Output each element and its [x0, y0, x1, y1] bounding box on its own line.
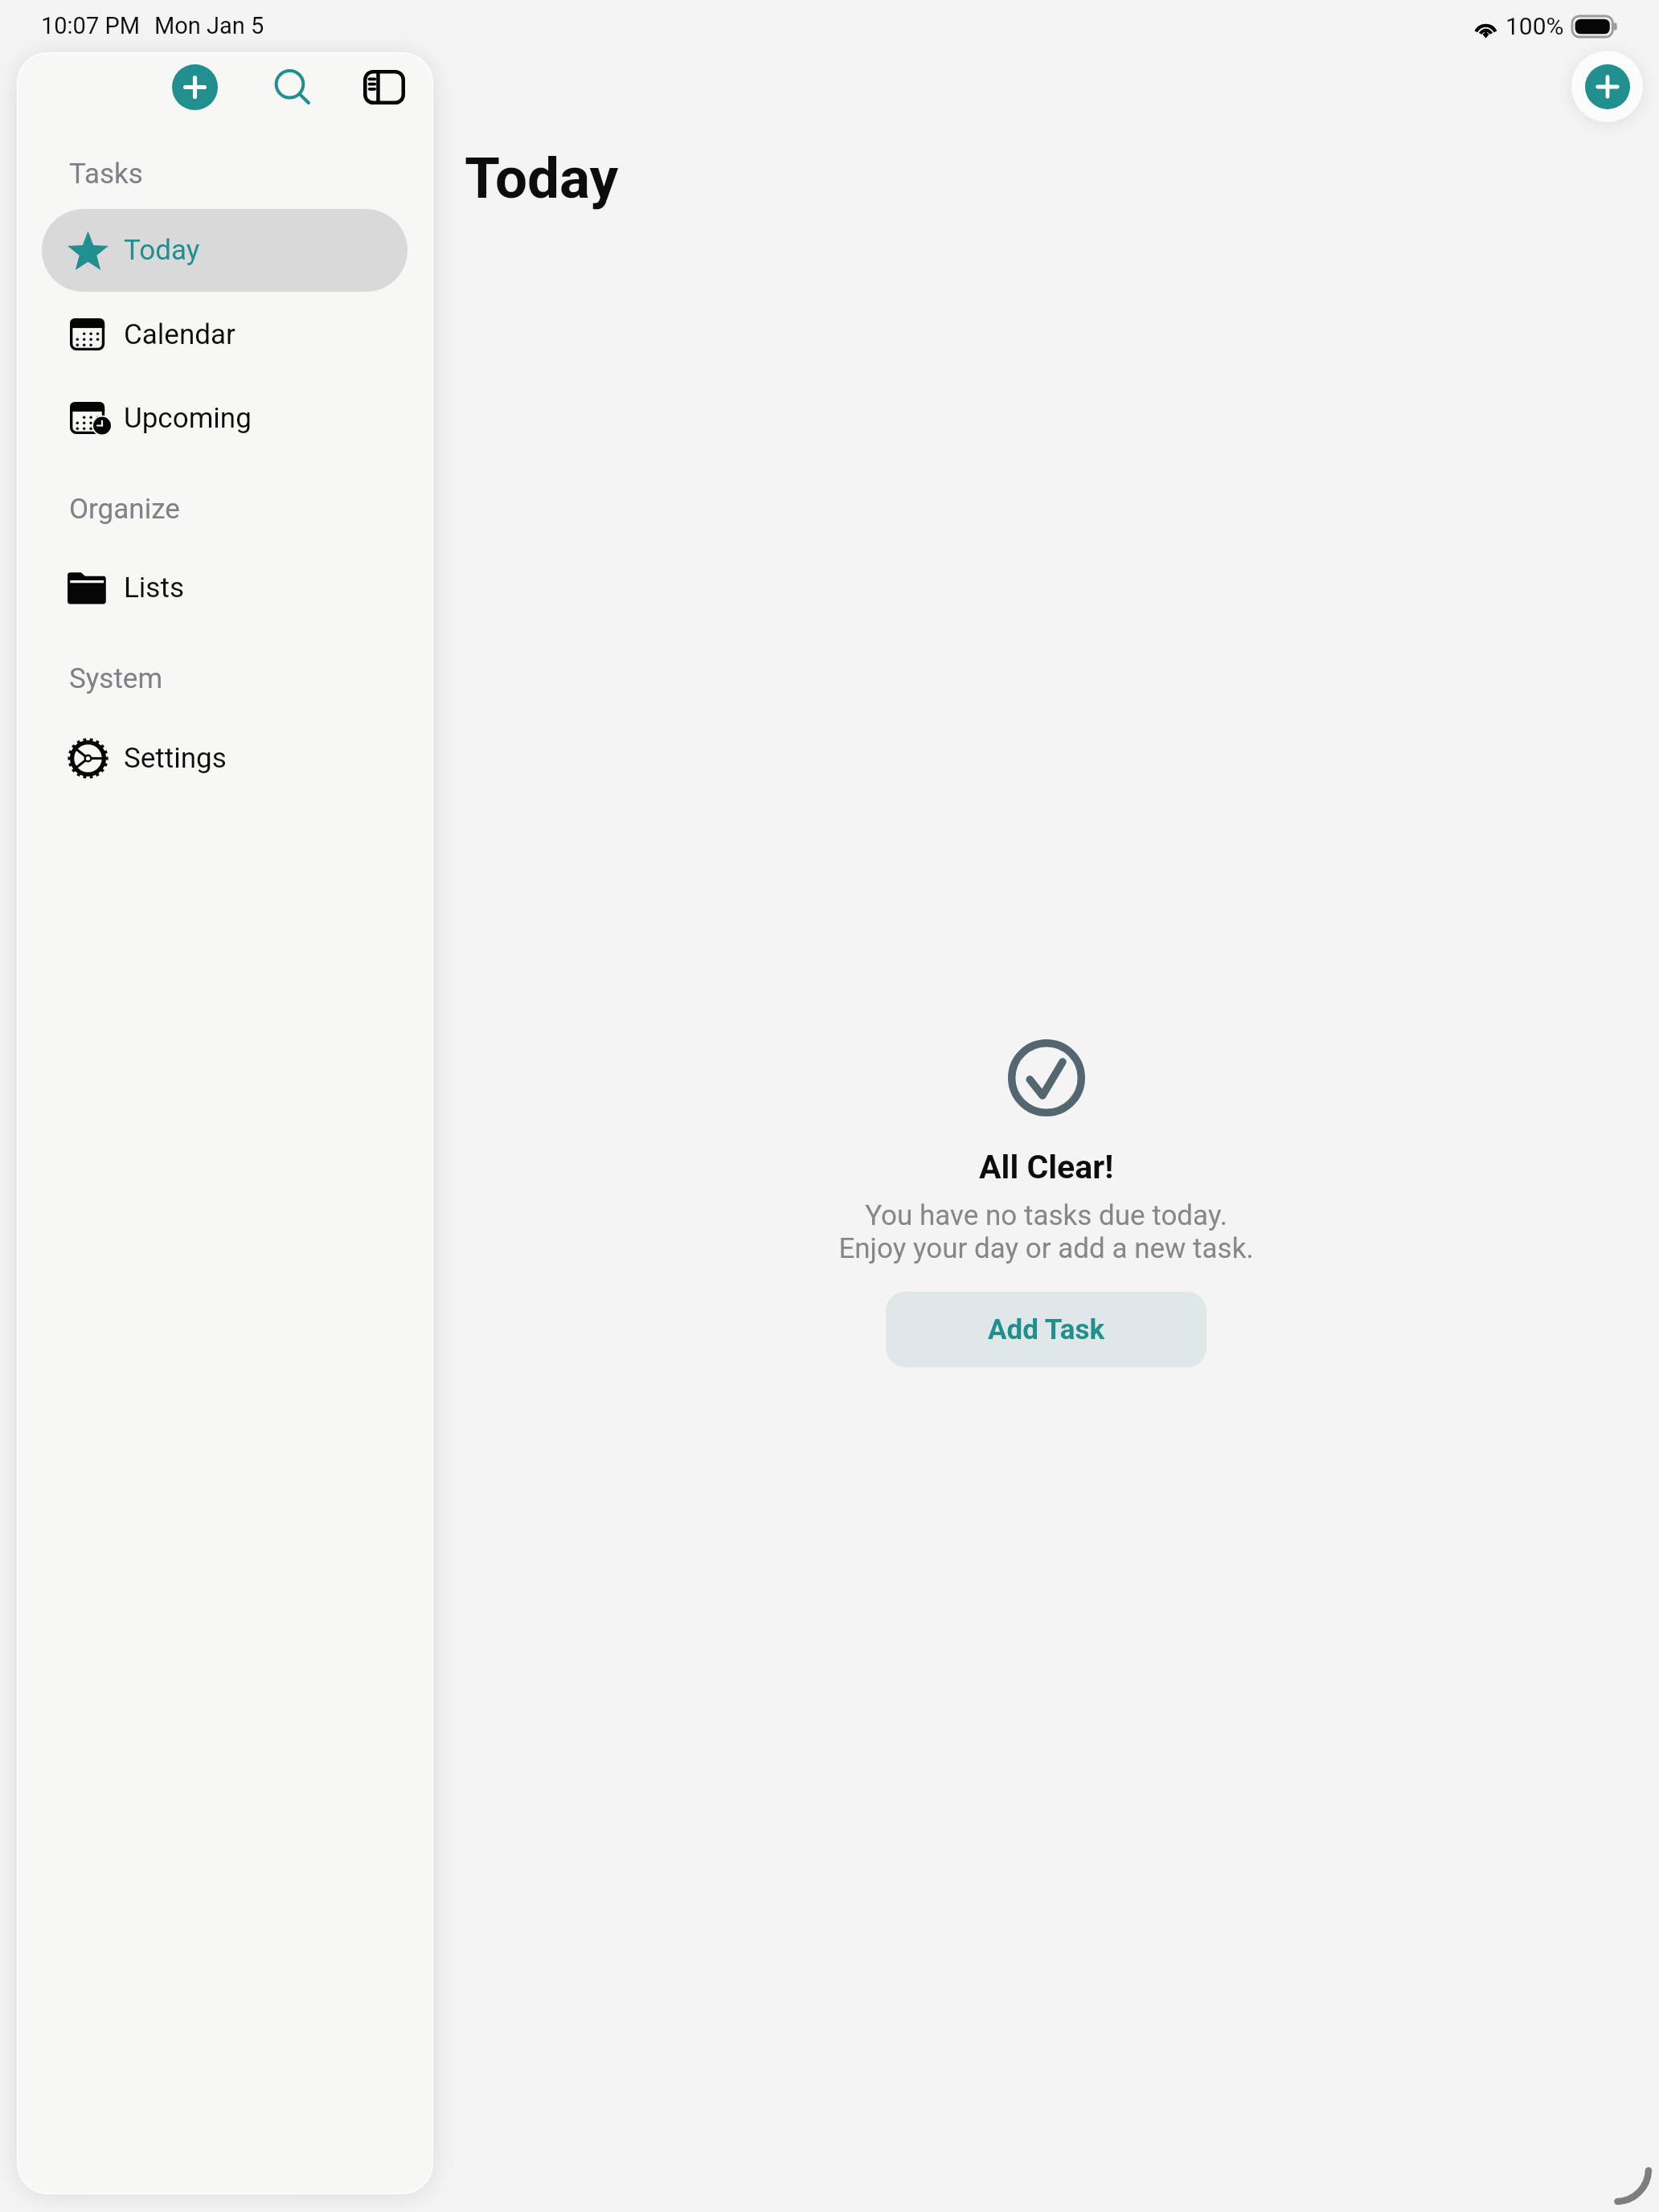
button[interactable]: New task	[172, 64, 218, 110]
button[interactable]: Search	[268, 63, 316, 111]
staticText: Today	[124, 234, 200, 267]
staticText: System	[69, 662, 163, 695]
button[interactable]: Add task	[1571, 51, 1643, 122]
staticText: Organize	[69, 493, 180, 526]
staticText: Mon Jan 5	[154, 12, 264, 39]
staticText: Add Task	[988, 1313, 1105, 1346]
button[interactable]: Add Task	[886, 1292, 1206, 1367]
staticText: Tasks	[69, 158, 143, 190]
staticText: Calendar	[124, 318, 236, 351]
staticText: You have no tasks due today. Enjoy your …	[838, 1199, 1254, 1265]
button[interactable]: Calendar	[42, 298, 406, 371]
staticText: 100%	[1505, 12, 1564, 40]
button[interactable]: Upcoming	[42, 382, 406, 454]
staticText: All Clear!	[979, 1148, 1114, 1186]
button[interactable]: Lists	[42, 551, 406, 624]
button[interactable]: Today	[42, 209, 408, 292]
staticText: Today	[465, 145, 619, 211]
staticText: Upcoming	[124, 402, 252, 435]
button[interactable]: Settings	[42, 722, 406, 794]
button[interactable]: Toggle sidebar	[360, 63, 408, 111]
staticText: 10:07 PM	[41, 12, 141, 39]
staticText: Settings	[124, 742, 227, 775]
staticText: Lists	[124, 571, 184, 604]
